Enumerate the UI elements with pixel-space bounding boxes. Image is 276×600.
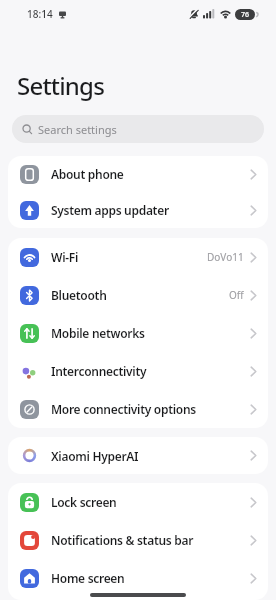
staticText: More connectivity options bbox=[51, 401, 196, 417]
staticText: Search settings bbox=[38, 122, 117, 137]
staticText: About phone bbox=[51, 166, 124, 182]
staticText: Settings bbox=[17, 69, 105, 102]
button[interactable]: Xiaomi HyperAI bbox=[8, 437, 268, 474]
staticText: Interconnectivity bbox=[51, 363, 147, 379]
staticText: Mobile networks bbox=[51, 325, 145, 341]
staticText: Home screen bbox=[51, 570, 125, 586]
staticText: Bluetooth bbox=[51, 287, 107, 303]
staticText: System apps updater bbox=[51, 202, 169, 218]
staticText: 18:14 bbox=[27, 7, 53, 21]
staticText: 76 bbox=[241, 10, 250, 20]
staticText: DoVo11 bbox=[207, 250, 244, 264]
staticText: Lock screen bbox=[51, 494, 117, 510]
staticText: Wi-Fi bbox=[51, 249, 79, 265]
button[interactable]: More connectivity options bbox=[8, 390, 268, 428]
button[interactable]: Search settings bbox=[12, 115, 264, 143]
button[interactable]: System apps updater bbox=[8, 192, 268, 228]
button[interactable]: Lock screen bbox=[8, 483, 268, 521]
button[interactable]: About phone bbox=[8, 156, 268, 192]
staticText: Xiaomi HyperAI bbox=[51, 448, 139, 464]
staticText: Off bbox=[229, 288, 244, 302]
button[interactable]: Interconnectivity bbox=[8, 352, 268, 390]
button[interactable]: Wi-Fi bbox=[8, 238, 268, 276]
button[interactable]: Mobile networks bbox=[8, 314, 268, 352]
button[interactable]: Bluetooth bbox=[8, 276, 268, 314]
staticText: Notifications & status bar bbox=[51, 532, 194, 548]
button[interactable]: Notifications & status bar bbox=[8, 521, 268, 559]
button[interactable]: Home screen bbox=[8, 559, 268, 597]
